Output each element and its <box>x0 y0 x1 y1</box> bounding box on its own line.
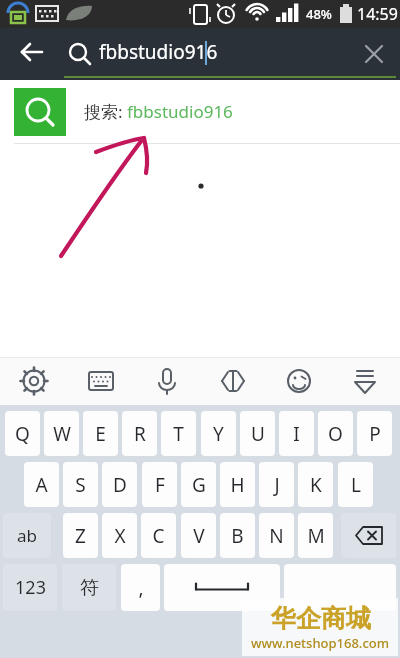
button[interactable]: J <box>259 462 294 507</box>
button[interactable]: C <box>141 513 176 558</box>
button[interactable]: P <box>357 411 392 456</box>
staticText: L <box>351 472 361 498</box>
button[interactable]: X <box>102 513 137 558</box>
staticText: F <box>155 472 165 498</box>
button[interactable]: , <box>121 564 160 611</box>
staticText: T <box>173 421 184 447</box>
button[interactable]: Emoji <box>277 359 321 403</box>
button[interactable]: D <box>102 462 137 507</box>
button[interactable]: Y <box>201 411 236 456</box>
staticText: C <box>152 523 165 549</box>
button[interactable]: Backspace <box>341 513 396 558</box>
button[interactable]: O <box>318 411 353 456</box>
button[interactable]: 123 <box>3 564 57 611</box>
button[interactable]: R <box>122 411 157 456</box>
button[interactable]: L <box>338 462 373 507</box>
staticText: 123 <box>15 575 46 600</box>
button[interactable]: T <box>161 411 196 456</box>
staticText: A <box>35 472 48 498</box>
button[interactable]: Settings <box>12 359 56 403</box>
button[interactable]: S <box>63 462 98 507</box>
button[interactable]: H <box>220 462 255 507</box>
staticText: H <box>230 472 245 498</box>
button[interactable]: N <box>259 513 294 558</box>
button[interactable]: ab <box>3 513 51 558</box>
button[interactable]: W <box>44 411 79 456</box>
staticText: S <box>75 472 86 498</box>
button[interactable]: K <box>298 462 333 507</box>
button[interactable]: Space <box>164 564 280 611</box>
staticText: Y <box>213 421 224 447</box>
button[interactable]: G <box>181 462 216 507</box>
staticText: E <box>95 421 106 447</box>
staticText: B <box>231 523 244 549</box>
staticText: R <box>134 421 146 447</box>
button[interactable]: Hide keyboard <box>343 359 387 403</box>
button[interactable]: F <box>142 462 177 507</box>
staticText: M <box>307 523 325 549</box>
staticText: P <box>369 421 381 447</box>
button[interactable]: Clear query <box>352 32 396 76</box>
staticText: G <box>192 472 206 498</box>
staticText: U <box>251 421 265 447</box>
button[interactable]: E <box>83 411 118 456</box>
button[interactable]: I <box>279 411 314 456</box>
button[interactable]: Cursor control <box>211 359 255 403</box>
staticText: K <box>310 472 322 498</box>
staticText: , <box>138 575 144 601</box>
button[interactable]: Back <box>8 30 56 78</box>
staticText: 搜索: <box>84 100 127 123</box>
staticText: V <box>193 523 205 549</box>
staticText: fbbstudio916 <box>99 39 218 65</box>
button[interactable]: Keyboard layout <box>79 359 123 403</box>
button[interactable]: Q <box>5 411 40 456</box>
staticText: 华企商城 <box>271 603 371 634</box>
button[interactable]: Enter <box>284 564 396 611</box>
staticText: Q <box>15 421 30 447</box>
staticText: www.netshop168.com <box>251 634 390 652</box>
staticText: fbbstudio916 <box>127 100 233 123</box>
staticText: X <box>114 523 126 549</box>
button[interactable]: V <box>181 513 216 558</box>
staticText: I <box>293 421 300 447</box>
staticText: W <box>53 421 71 447</box>
staticText: 48% <box>306 5 332 23</box>
staticText: D <box>113 472 127 498</box>
staticText: J <box>274 472 280 498</box>
staticText: O <box>328 421 343 447</box>
button[interactable]: 符 <box>62 564 116 611</box>
button[interactable]: U <box>240 411 275 456</box>
staticText: Z <box>75 523 86 549</box>
staticText: ab <box>17 524 37 547</box>
button[interactable]: 搜索: <box>0 80 400 143</box>
staticText: 14:59 <box>357 3 398 25</box>
staticText: 符 <box>80 576 99 600</box>
button[interactable]: A <box>24 462 59 507</box>
button[interactable]: Z <box>63 513 98 558</box>
button[interactable]: Voice input <box>145 359 189 403</box>
staticText: N <box>269 523 284 549</box>
button[interactable]: M <box>298 513 333 558</box>
button[interactable]: B <box>220 513 255 558</box>
